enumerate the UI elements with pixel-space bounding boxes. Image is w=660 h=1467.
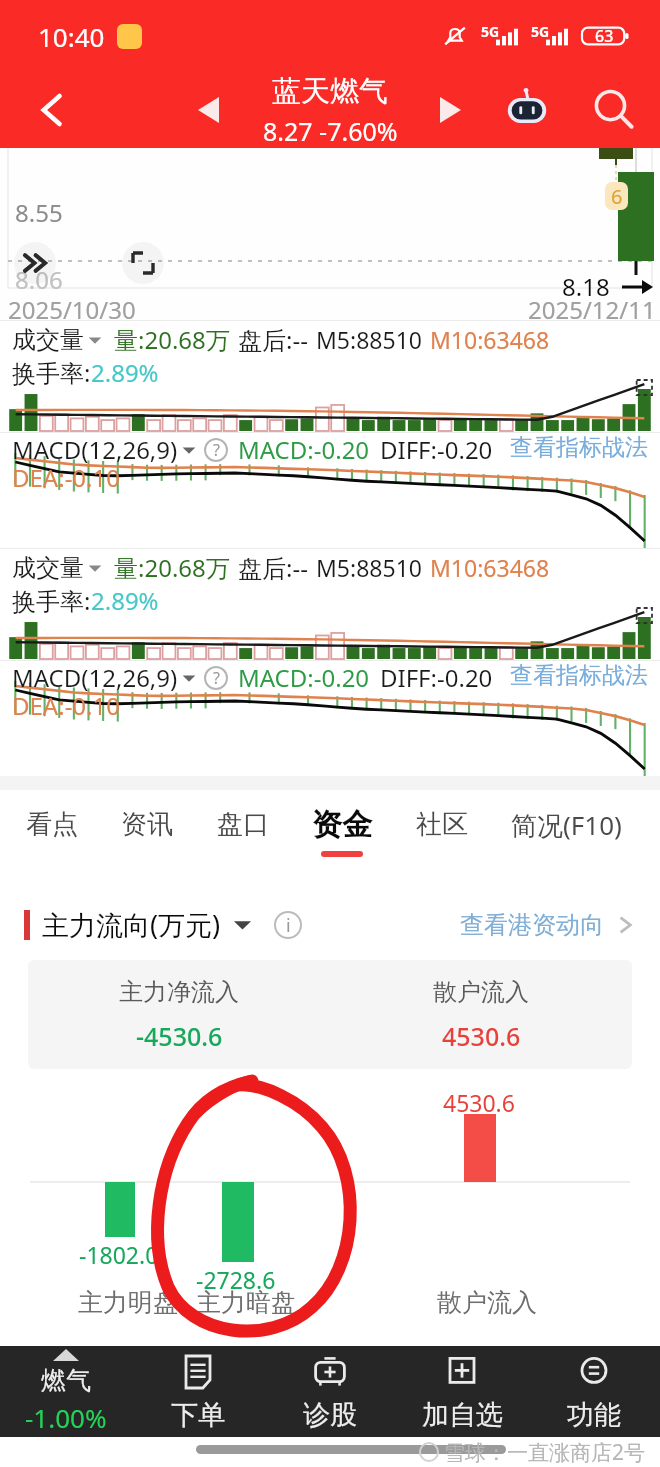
staticText: 5G [481,22,500,41]
staticText: M10:63468 [430,324,550,355]
staticText: ? [213,439,220,461]
button[interactable]: 功能 [528,1346,660,1437]
staticText: -1802.0 [79,1239,159,1270]
staticText: DEA:-0.10 [12,461,120,494]
button[interactable]: 查看指标战法 [510,433,648,462]
staticText: 2025/12/11 [528,293,656,326]
button[interactable]: Scroll chart [14,242,56,284]
button[interactable]: 查看指标战法 [510,661,648,690]
staticText: -2728.6 [196,1264,276,1295]
button[interactable]: 燃气 [0,1346,132,1437]
staticText: 63 [595,25,614,47]
staticText: 蓝天燃气 [272,73,388,110]
staticText: 4530.6 [443,1087,515,1118]
staticText: MACD:-0.20 [238,433,370,466]
staticText: i [286,913,291,938]
staticText: M5:88510 [316,324,422,355]
button[interactable]: 资金 [312,806,372,857]
button[interactable]: Back [0,72,104,148]
staticText: 换手率: [12,584,91,617]
staticText: ? [213,667,220,689]
staticText: 诊股 [303,1398,357,1432]
staticText: 量:20.68万 [114,323,230,356]
staticText: 下单 [171,1398,225,1432]
button[interactable]: 资讯 [121,808,173,854]
button[interactable]: 蓝天燃气 [0,72,660,148]
button[interactable]: 查看港资动向 [460,910,636,940]
staticText: 盘口 [217,808,269,841]
staticText: 燃气 [41,1365,91,1396]
staticText: 5G [531,22,550,41]
staticText: 6 [611,183,623,210]
staticText: 加自选 [422,1398,503,1432]
staticText: DIFF:-0.20 [380,661,493,694]
button[interactable]: Fullscreen chart [122,242,164,284]
staticText: M5:88510 [316,552,422,583]
staticText: 看点 [26,808,78,841]
staticText: 成交量 [12,553,84,583]
staticText: 社区 [416,808,468,841]
staticText: 资金 [312,806,372,844]
button[interactable]: 社区 [416,808,468,854]
staticText: 8.06 [15,263,63,296]
button[interactable]: 下单 [132,1346,264,1437]
staticText: DIFF:-0.20 [380,433,493,466]
staticText: 资讯 [121,808,173,841]
button[interactable]: 看点 [26,808,78,854]
button[interactable]: 简况(F10) [511,807,622,856]
staticText: 10:40 [38,19,105,54]
staticText: 功能 [567,1398,621,1432]
staticText: 散户流入 [433,977,529,1007]
staticText: 盘后:-- [238,551,308,584]
staticText: 简况(F10) [511,807,622,843]
staticText: 2.89% [91,584,159,617]
button[interactable]: 盘口 [217,808,269,854]
staticText: 主力暗盘 [196,1287,296,1318]
staticText: -1.00% [25,1400,107,1435]
staticText: 成交量 [12,325,84,355]
staticText: 散户流入 [437,1287,537,1318]
staticText: MACD(12,26,9) [12,433,178,466]
staticText: 2025/10/30 [8,293,136,326]
button[interactable]: 加自选 [396,1346,528,1437]
staticText: 盘后:-- [238,323,308,356]
staticText: 查看港资动向 [460,910,604,940]
staticText: DEA:-0.10 [12,689,120,722]
button[interactable]: Previous stock [104,72,219,148]
staticText: 量:20.68万 [114,551,230,584]
button[interactable]: Next stock [414,72,486,148]
staticText: 雪球：一直涨商店2号 [444,1438,646,1467]
staticText: -4530.6 [136,1019,223,1053]
staticText: 主力明盘 [78,1287,178,1318]
staticText: 8.18 [562,270,610,303]
staticText: 主力流向(万元) [42,906,221,943]
button[interactable]: Search [568,72,660,148]
staticText: 换手率: [12,356,91,389]
button[interactable]: AI assistant [486,72,568,148]
staticText: 4530.6 [442,1019,521,1053]
button[interactable]: 诊股 [264,1346,396,1437]
staticText: 8.27 -7.60% [263,114,398,148]
staticText: 8.55 [15,196,63,229]
staticText: 2.89% [91,356,159,389]
staticText: MACD:-0.20 [238,661,370,694]
staticText: M10:63468 [430,552,550,583]
staticText: MACD(12,26,9) [12,661,178,694]
staticText: 主力净流入 [119,977,239,1007]
